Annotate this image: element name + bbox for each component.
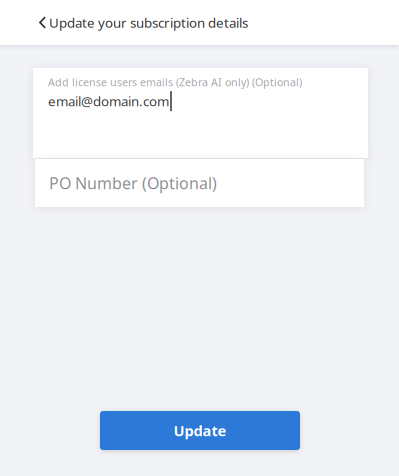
button[interactable]: PO Number (Optional) bbox=[35, 159, 364, 207]
staticText: Add license users emails (Zebra AI only)… bbox=[48, 75, 302, 89]
staticText: PO Number (Optional) bbox=[49, 172, 217, 194]
staticText: email@domain.com bbox=[48, 92, 169, 110]
button[interactable]: Update bbox=[100, 411, 300, 450]
button[interactable]: Add license users emails (Zebra AI only)… bbox=[33, 68, 368, 158]
staticText: Update bbox=[173, 421, 226, 440]
staticText: Update your subscription details bbox=[49, 14, 248, 31]
button[interactable]: Update your subscription details bbox=[0, 0, 248, 45]
